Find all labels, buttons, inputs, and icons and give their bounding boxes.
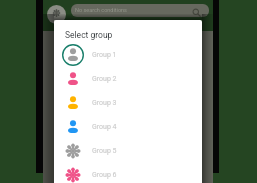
staticText: Group 6 [92,171,117,179]
button[interactable]: Search [192,8,201,17]
staticText: No search conditions [75,7,127,13]
staticText: Group 1 [92,51,117,59]
button[interactable]: No search conditions [71,4,209,17]
button[interactable]: Group 5 [54,139,202,163]
staticText: Group 3 [92,99,117,107]
button[interactable]: Account [47,5,66,24]
button[interactable]: Group 3 [54,91,202,115]
button[interactable]: Group 2 [54,67,202,91]
staticText: Select group [65,30,113,40]
staticText: Group 5 [92,147,117,155]
staticText: Group 4 [92,123,117,131]
button[interactable]: Group 1 [54,43,202,67]
button[interactable]: Group 6 [54,163,202,183]
staticText: Group 2 [92,75,117,83]
button[interactable]: Group 4 [54,115,202,139]
